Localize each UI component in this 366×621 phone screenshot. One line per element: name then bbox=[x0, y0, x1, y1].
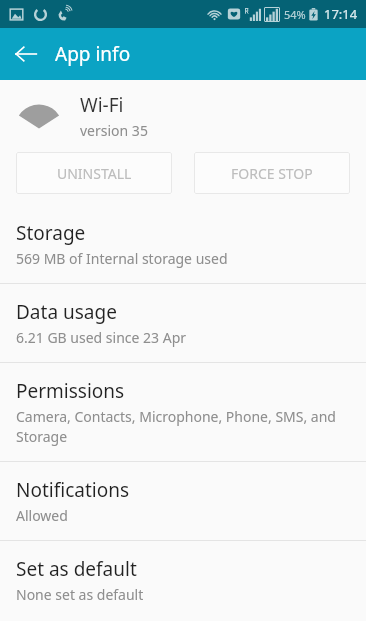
staticText: Storage bbox=[16, 220, 86, 246]
staticText: Wi-Fi bbox=[80, 92, 124, 118]
staticText: 6.21 GB used since 23 Apr bbox=[16, 328, 187, 347]
staticText: Permissions bbox=[16, 378, 125, 404]
staticText: None set as default bbox=[16, 585, 144, 604]
staticText: App info bbox=[55, 41, 131, 67]
button[interactable]: Notifications bbox=[0, 462, 366, 540]
staticText: FORCE STOP bbox=[231, 164, 313, 183]
button[interactable]: Data usage bbox=[0, 284, 366, 362]
button[interactable]: Set as default bbox=[0, 541, 366, 619]
button[interactable]: FORCE STOP bbox=[194, 152, 350, 194]
staticText: 54% bbox=[284, 7, 306, 22]
staticText: Camera, Contacts, Microphone, Phone, SMS… bbox=[16, 407, 344, 446]
staticText: Set as default bbox=[16, 556, 137, 582]
staticText: Data usage bbox=[16, 299, 117, 325]
button[interactable]: Permissions bbox=[0, 363, 366, 461]
staticText: 569 MB of Internal storage used bbox=[16, 249, 228, 268]
staticText: UNINSTALL bbox=[57, 164, 132, 183]
button[interactable]: Back bbox=[6, 34, 46, 74]
button[interactable]: UNINSTALL bbox=[16, 152, 172, 194]
staticText: version 35 bbox=[80, 121, 148, 140]
staticText: Allowed bbox=[16, 506, 68, 525]
staticText: 17:14 bbox=[324, 5, 358, 23]
staticText: Notifications bbox=[16, 477, 130, 503]
button[interactable]: Storage bbox=[0, 205, 366, 283]
